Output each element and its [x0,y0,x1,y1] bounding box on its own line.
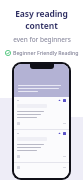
button[interactable]: Playback options [14,97,69,129]
staticText: Beginner Friendly Reading [13,49,79,56]
button[interactable]: Beginner Friendly Reading [3,48,81,57]
staticText: Easy reading content [0,8,83,32]
other: Playback options [58,132,66,135]
button[interactable]: Playback options [14,130,69,162]
other: Playback options [58,99,66,102]
staticText: even for beginners [13,35,71,44]
